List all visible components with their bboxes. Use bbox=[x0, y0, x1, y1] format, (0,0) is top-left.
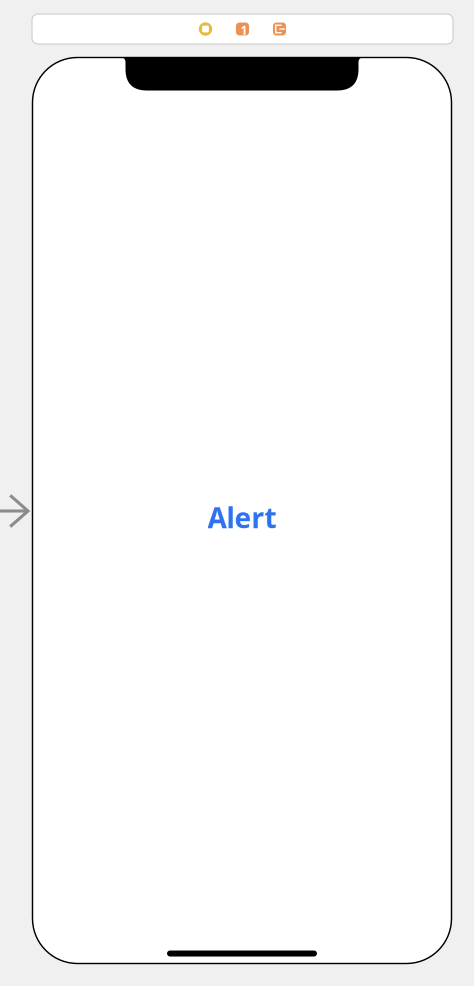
button[interactable]: Alert bbox=[207, 499, 276, 536]
button[interactable]: Preview variants bbox=[234, 21, 250, 37]
staticText: 1 bbox=[240, 22, 247, 38]
staticText: Alert bbox=[207, 499, 276, 536]
button[interactable]: Stop preview bbox=[197, 21, 213, 37]
button[interactable]: Open preview in new window bbox=[271, 21, 287, 37]
